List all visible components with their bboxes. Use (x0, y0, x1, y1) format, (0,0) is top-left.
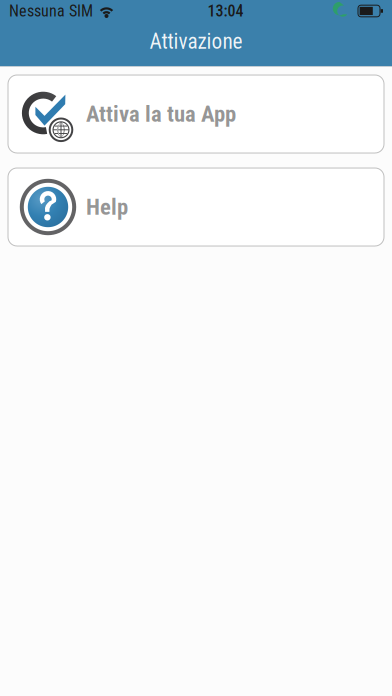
staticText: Attiva la tua App (86, 101, 236, 127)
button[interactable]: Attiva la tua App (8, 75, 384, 153)
staticText: 13:04 (207, 2, 243, 20)
staticText: Help (86, 194, 128, 220)
button[interactable]: Help (8, 168, 384, 246)
staticText: Attivazione (149, 29, 242, 54)
staticText: Nessuna SIM (9, 2, 93, 20)
